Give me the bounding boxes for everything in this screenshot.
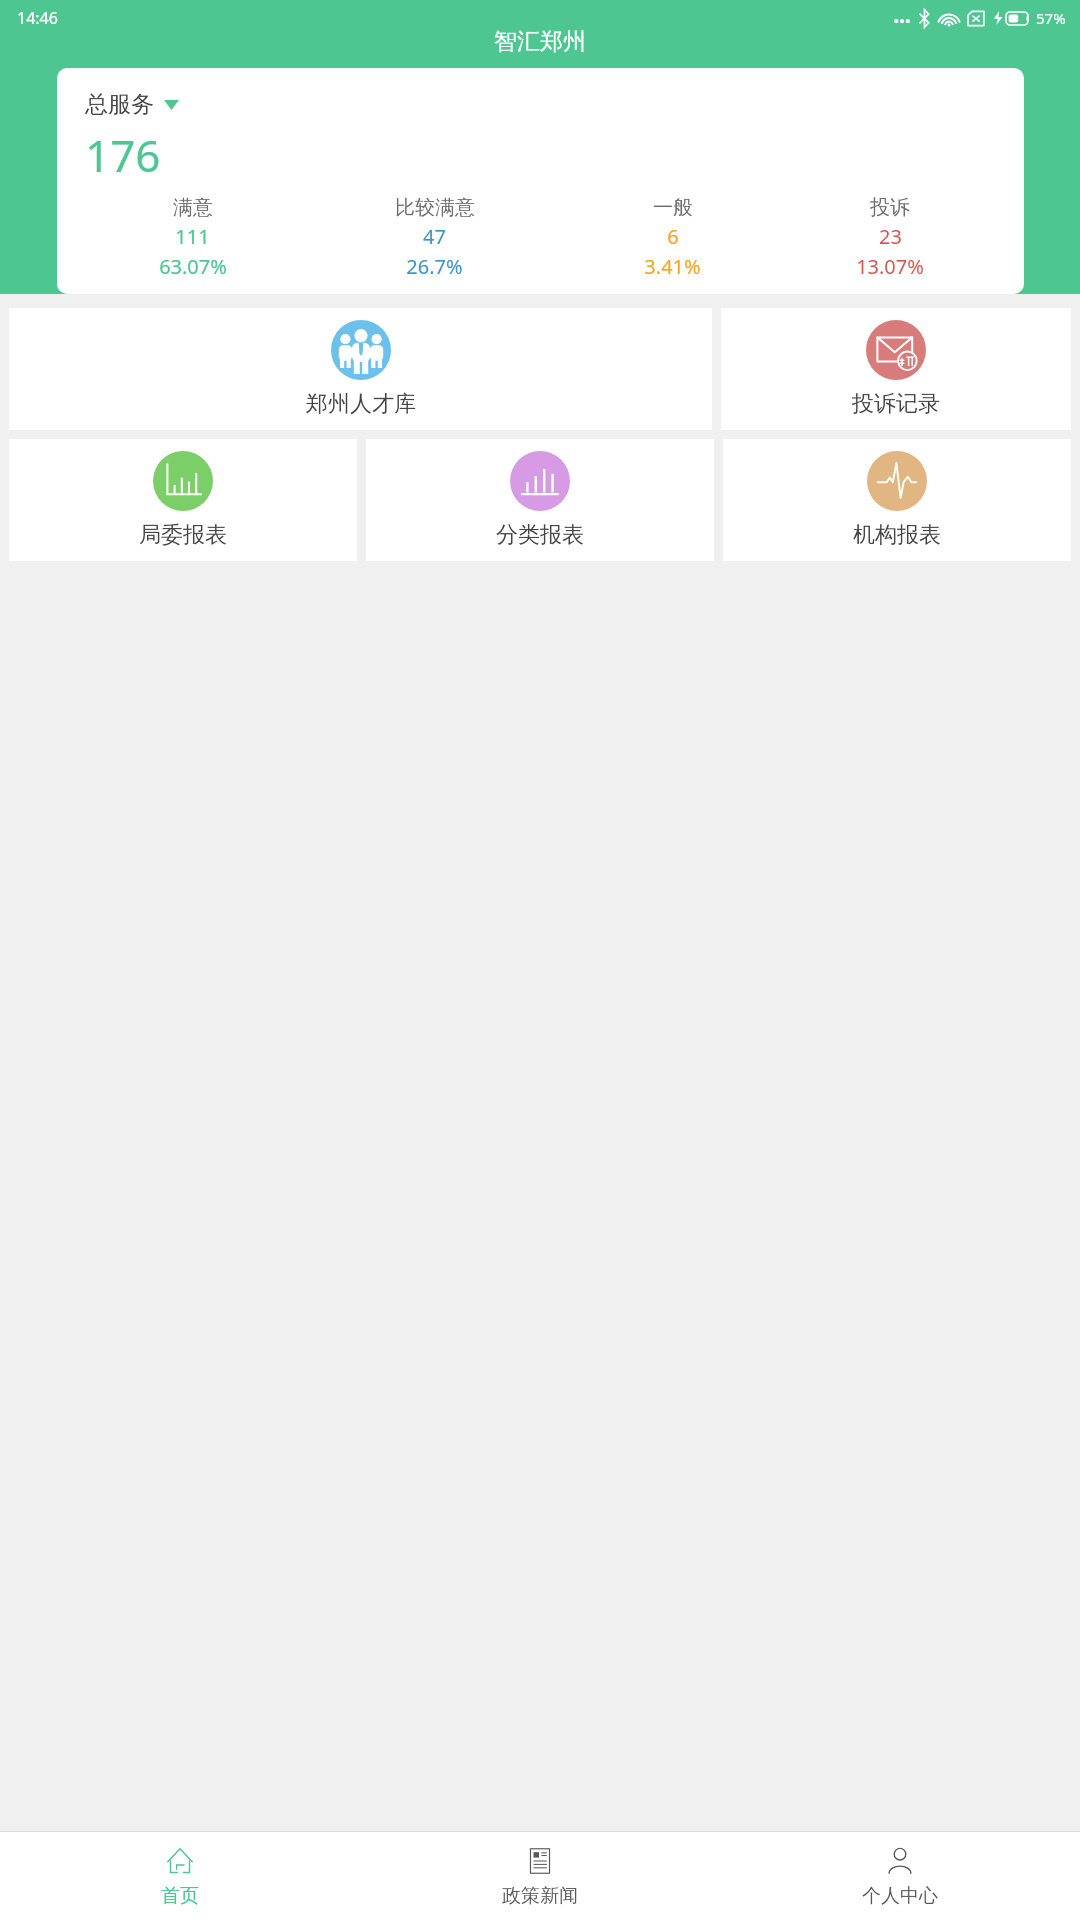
staticText: 26.7%	[406, 253, 463, 276]
staticText: 总服务	[85, 90, 154, 119]
staticText: 机构报表	[853, 521, 941, 549]
staticText: 分类报表	[496, 521, 584, 549]
staticText: 郑州人才库	[306, 390, 416, 418]
staticText: 政策新闻	[502, 1884, 578, 1908]
staticText: 14:46	[17, 7, 58, 29]
staticText: 63.07%	[159, 253, 227, 276]
button[interactable]: 首页	[0, 1832, 360, 1920]
staticText: 111	[175, 223, 210, 250]
staticText: 176	[85, 125, 161, 185]
button[interactable]: 个人中心	[720, 1832, 1080, 1920]
staticText: 满意	[173, 195, 213, 220]
button[interactable]: 投诉记录	[721, 308, 1071, 430]
staticText: 比较满意	[395, 195, 475, 220]
button[interactable]: 分类报表	[366, 439, 714, 561]
staticText: 6	[667, 223, 679, 250]
staticText: 智汇郑州	[494, 27, 586, 56]
staticText: 个人中心	[862, 1884, 938, 1908]
staticText: 局委报表	[139, 521, 227, 549]
staticText: 一般	[653, 195, 693, 220]
staticText: 13.07%	[856, 253, 924, 276]
staticText: 投诉记录	[852, 390, 940, 418]
staticText: 投诉	[870, 195, 910, 220]
staticText: 23	[879, 223, 902, 250]
button[interactable]: 机构报表	[723, 439, 1071, 561]
button[interactable]: 郑州人才库	[9, 308, 712, 430]
staticText: 首页	[161, 1884, 199, 1908]
staticText: 47	[423, 223, 446, 250]
button[interactable]: 政策新闻	[360, 1832, 720, 1920]
button[interactable]: 局委报表	[9, 439, 357, 561]
staticText: 57%	[1036, 8, 1066, 28]
staticText: 3.41%	[644, 253, 701, 276]
button[interactable]: 总服务	[57, 68, 1024, 294]
